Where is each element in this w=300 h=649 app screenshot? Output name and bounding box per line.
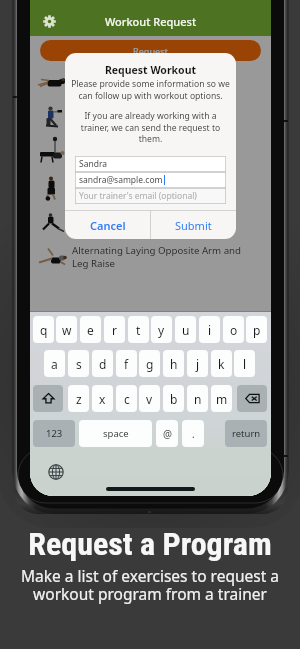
button[interactable]: @ (156, 420, 178, 447)
staticText: q (40, 322, 48, 338)
staticText: s (76, 356, 82, 372)
button[interactable]: Request (40, 40, 261, 61)
staticText: o (230, 322, 238, 338)
staticText: Submit (175, 218, 212, 233)
staticText: b (170, 391, 178, 407)
button[interactable]: Alternating Dumbbell Curl (30, 99, 271, 134)
staticText: Request (133, 45, 169, 57)
button[interactable]: sandra@sample.com (75, 172, 226, 188)
button[interactable]: Shift (33, 385, 63, 412)
staticText: Side Lying Hip Abduction (72, 75, 186, 88)
button[interactable]: Bodyweight Squat (30, 204, 271, 239)
staticText: If you are already working with a traine… (65, 110, 236, 144)
staticText: Alternating Dumbbell Curl (72, 110, 192, 123)
button[interactable]: Your trainer's email (optional) (75, 188, 226, 204)
staticText: i (208, 322, 212, 338)
button[interactable]: Barbell Bench Press (30, 134, 271, 169)
staticText: return (232, 427, 261, 440)
staticText: r (112, 322, 117, 338)
button[interactable]: Backspace (237, 385, 267, 412)
staticText: . (192, 427, 195, 441)
button[interactable]: . (182, 420, 204, 447)
button[interactable]: Side Lying Hip Abduction (30, 64, 271, 99)
staticText: 123 (46, 427, 63, 440)
button[interactable]: c (116, 385, 137, 412)
staticText: j (196, 356, 200, 372)
button[interactable]: y (151, 316, 172, 343)
staticText: Barbell Bench Press (72, 145, 162, 158)
button[interactable]: Sandra (75, 156, 226, 172)
button[interactable]: u (175, 316, 196, 343)
button[interactable]: space (79, 420, 152, 447)
staticText: c (124, 391, 130, 407)
staticText: h (170, 356, 178, 372)
button[interactable]: g (139, 350, 160, 377)
button[interactable]: l (234, 350, 255, 377)
staticText: d (99, 356, 107, 372)
staticText: w (62, 322, 72, 338)
staticText: sandra@sample.com (79, 174, 163, 186)
staticText: a (51, 356, 58, 372)
staticText: Request Workout (65, 63, 236, 77)
staticText: g (146, 356, 154, 372)
button[interactable]: o (223, 316, 244, 343)
button[interactable]: p (246, 316, 267, 343)
staticText: n (194, 391, 202, 407)
staticText: x (99, 391, 106, 407)
staticText: v (146, 391, 153, 407)
button[interactable]: r (104, 316, 125, 343)
button[interactable]: m (211, 385, 232, 412)
staticText: z (76, 391, 82, 407)
button[interactable]: q (33, 316, 54, 343)
staticText: e (87, 322, 94, 338)
staticText: Bodyweight Squat (72, 215, 155, 228)
button[interactable]: z (68, 385, 89, 412)
staticText: Make a list of exercises to request a wo… (0, 565, 300, 605)
button[interactable]: j (187, 350, 208, 377)
button[interactable]: s (68, 350, 89, 377)
staticText: y (158, 322, 165, 338)
button[interactable]: i (199, 316, 220, 343)
staticText: Alternating Laying Opposite Arm and Leg … (72, 244, 244, 270)
button[interactable]: 123 (33, 420, 75, 447)
staticText: k (218, 356, 225, 372)
staticText: l (243, 356, 247, 372)
button[interactable]: Settings (39, 11, 59, 31)
staticText: m (216, 391, 228, 407)
button[interactable]: h (163, 350, 184, 377)
button[interactable]: t (128, 316, 149, 343)
button[interactable]: n (187, 385, 208, 412)
button[interactable]: x (92, 385, 113, 412)
staticText: Your trainer's email (optional) (79, 190, 197, 202)
staticText: Sandra (79, 158, 108, 170)
staticText: Request a Program (0, 525, 300, 563)
button[interactable]: v (139, 385, 160, 412)
staticText: p (253, 322, 261, 338)
button[interactable]: k (211, 350, 232, 377)
button[interactable]: b (163, 385, 184, 412)
staticText: u (182, 322, 190, 338)
button[interactable]: w (56, 316, 77, 343)
button[interactable]: e (80, 316, 101, 343)
staticText: t (136, 322, 141, 338)
button[interactable]: d (92, 350, 113, 377)
button[interactable]: Submit (151, 211, 236, 239)
staticText: Workout Request (30, 14, 271, 29)
staticText: @ (163, 427, 172, 441)
button[interactable]: f (116, 350, 137, 377)
button[interactable]: a (44, 350, 65, 377)
button[interactable]: return (225, 420, 267, 447)
staticText: Cancel (90, 218, 126, 233)
button[interactable]: Cancel (65, 211, 150, 239)
button[interactable]: Change keyboard (48, 464, 64, 480)
staticText: Please provide some information so we ca… (65, 78, 236, 101)
button[interactable]: Kettlebell Swing (30, 169, 271, 204)
staticText: space (103, 427, 129, 440)
button[interactable]: Alternating Laying Opposite Arm and Leg … (30, 239, 271, 274)
staticText: Kettlebell Swing (72, 180, 145, 193)
staticText: f (124, 356, 129, 372)
